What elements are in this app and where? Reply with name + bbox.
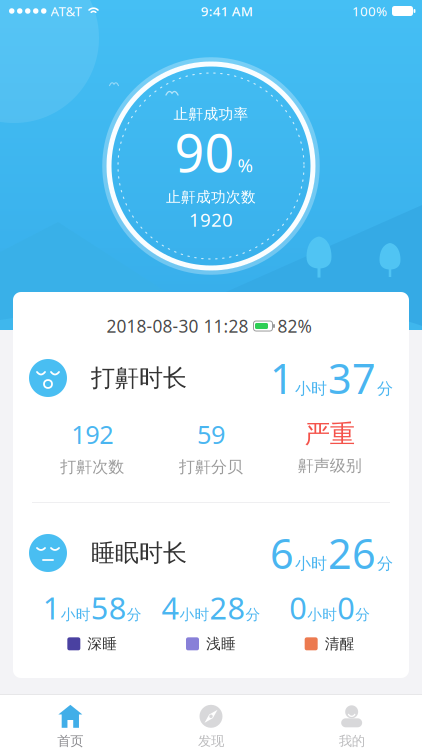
staticText: 0 (337, 587, 355, 628)
staticText: 1 (270, 351, 294, 405)
staticText: 4 (161, 587, 179, 628)
staticText: 我的 (339, 733, 365, 749)
button[interactable]: 发现 (141, 695, 281, 749)
button[interactable]: 我的 (281, 695, 422, 749)
staticText: 鼾声级别 (298, 456, 362, 475)
staticText: 6 (270, 526, 294, 580)
staticText: 小时 (307, 605, 337, 623)
staticText: 58 (91, 587, 127, 628)
staticText: 90 (174, 117, 234, 187)
staticText: 分 (245, 605, 260, 623)
staticText: % (237, 152, 253, 177)
staticText: 37 (328, 351, 376, 405)
staticText: 浅睡 (206, 635, 236, 653)
staticText: 打鼾次数 (60, 457, 124, 477)
staticText: 28 (209, 587, 245, 628)
staticText: 止鼾成功次数 (166, 188, 256, 206)
staticText: 首页 (57, 733, 83, 749)
button[interactable]: 首页 (0, 695, 141, 749)
staticText: 清醒 (325, 635, 355, 653)
staticText: 2018-08-30 11:28 (106, 314, 248, 337)
staticText: 分 (127, 605, 142, 623)
staticText: 9:41 AM (201, 2, 253, 20)
staticText: 82% (277, 314, 311, 337)
staticText: 小时 (295, 379, 327, 399)
staticText: 分 (377, 554, 393, 574)
staticText: 分 (377, 379, 393, 399)
staticText: 严重 (305, 419, 355, 450)
staticText: 59 (197, 417, 225, 451)
staticText: AT&T (50, 2, 81, 20)
staticText: 小时 (295, 554, 327, 574)
staticText: 睡眠时长 (91, 538, 187, 568)
staticText: 打鼾分贝 (179, 457, 243, 477)
staticText: 小时 (61, 605, 91, 623)
staticText: 192 (71, 417, 113, 451)
staticText: 深睡 (87, 635, 117, 653)
staticText: 26 (328, 526, 376, 580)
staticText: 0 (289, 587, 307, 628)
staticText: 止鼾成功率 (173, 105, 248, 123)
staticText: 1920 (189, 207, 233, 232)
staticText: 1 (43, 587, 61, 628)
staticText: 打鼾时长 (91, 363, 187, 393)
staticText: 分 (355, 605, 370, 623)
staticText: 发现 (198, 733, 224, 749)
staticText: 100% (352, 2, 387, 20)
staticText: 小时 (179, 605, 209, 623)
